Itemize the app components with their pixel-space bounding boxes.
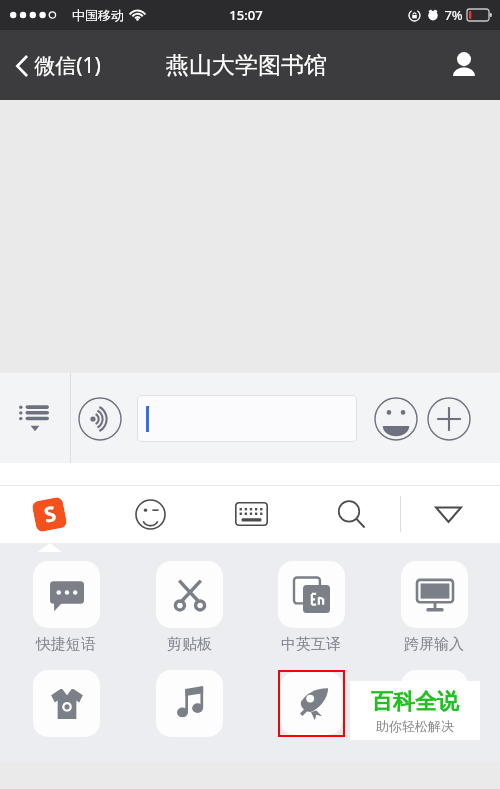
button[interactable]: Hide keyboard — [424, 490, 472, 538]
button[interactable]: 微信(1) — [14, 43, 103, 88]
staticText: 7% — [444, 6, 463, 24]
button[interactable]: Search — [327, 490, 375, 538]
button[interactable]: Keyboard — [227, 490, 275, 538]
button[interactable]: Contact profile — [444, 45, 484, 85]
staticText: 中国移动 — [72, 7, 124, 23]
button[interactable]: 跨屏输入 — [392, 561, 476, 654]
staticText: 百科全说 — [371, 688, 459, 716]
staticText: 燕山大学图书馆 — [166, 51, 327, 80]
staticText: 快捷短语 — [36, 635, 96, 654]
button[interactable]: Sogou keyboard — [25, 490, 73, 538]
staticText: 助你轻松解决 — [376, 718, 454, 734]
staticText: 跨屏输入 — [404, 635, 464, 654]
staticText: 剪贴板 — [167, 635, 212, 654]
staticText: 微信(1) — [34, 51, 101, 80]
staticText: 15:07 — [229, 6, 263, 24]
staticText: S — [41, 499, 59, 530]
button[interactable]: Emoji — [371, 394, 420, 443]
staticText: 中英互译 — [281, 635, 341, 654]
button[interactable]: Keyboard tool — [147, 670, 231, 737]
button[interactable] — [137, 395, 357, 442]
button[interactable]: Expressions — [126, 490, 174, 538]
button[interactable]: Keyboard tool — [392, 670, 476, 737]
button[interactable]: More options — [0, 373, 70, 463]
button[interactable]: 中英互译 — [269, 561, 353, 654]
button[interactable]: Voice input — [72, 391, 128, 447]
button[interactable]: 剪贴板 — [147, 561, 231, 654]
button[interactable]: 快捷短语 — [24, 561, 108, 654]
button[interactable]: Keyboard tool — [24, 670, 108, 737]
button[interactable]: Keyboard tool — [269, 670, 353, 737]
button[interactable]: More functions — [424, 394, 473, 443]
